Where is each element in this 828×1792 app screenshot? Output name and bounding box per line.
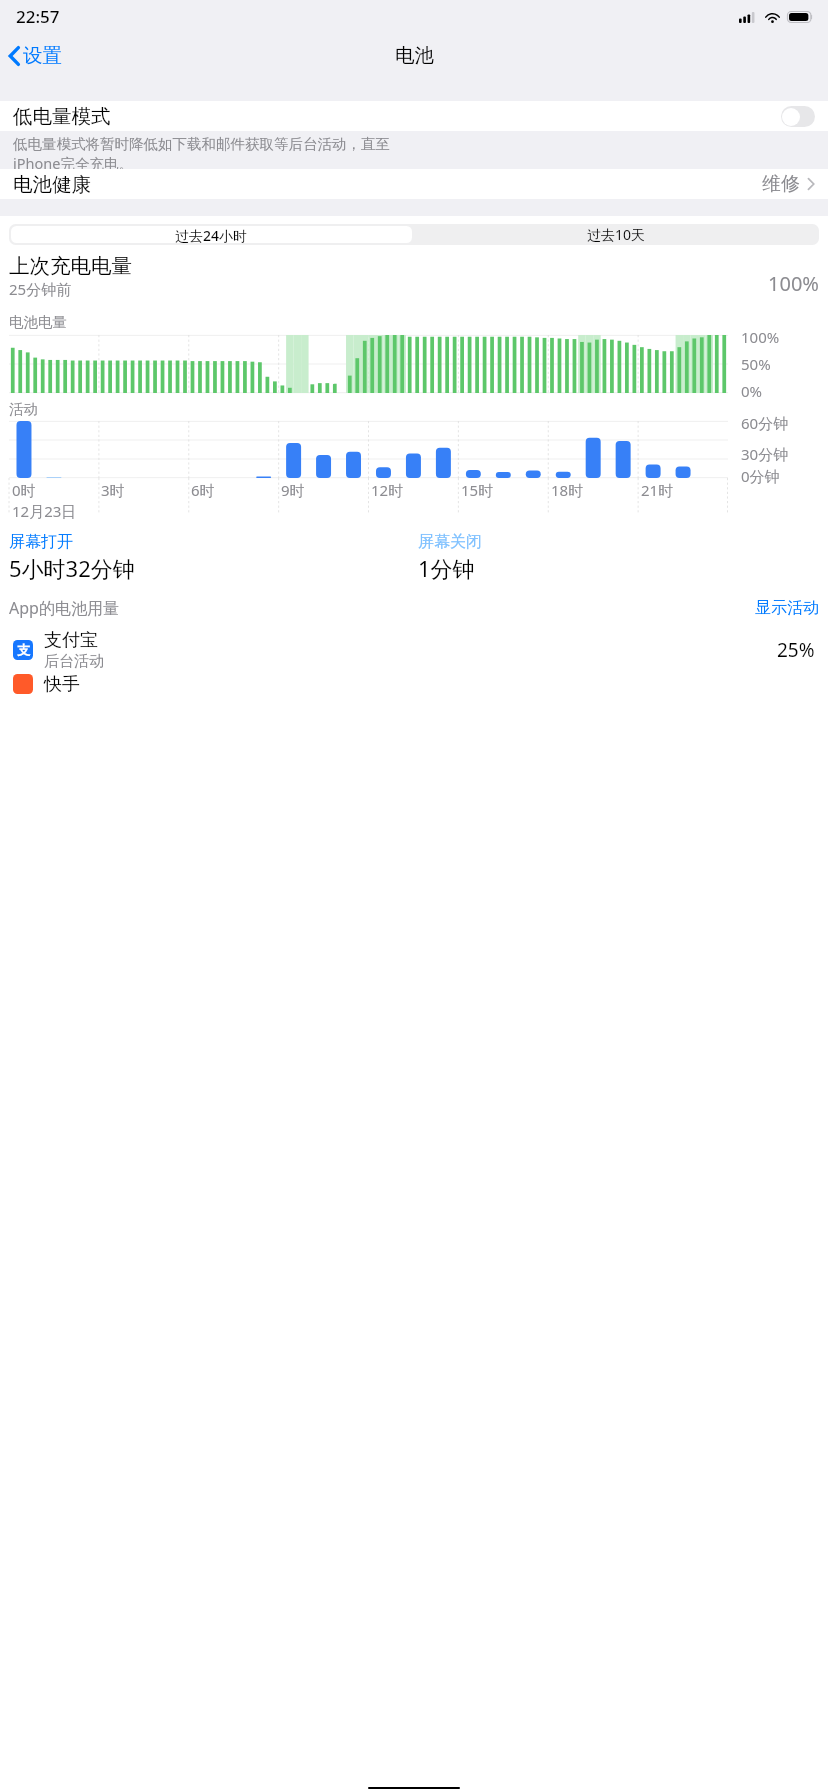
staticText: 过去10天	[587, 225, 646, 244]
staticText: 0时	[12, 480, 36, 500]
staticText: 9时	[281, 480, 305, 500]
button[interactable]: 设置	[6, 38, 64, 73]
button[interactable]: 显示活动	[755, 598, 819, 618]
button[interactable]: 低电量模式	[0, 101, 828, 131]
button[interactable]: 过去24小时	[11, 226, 412, 243]
staticText: 22:57	[16, 5, 60, 28]
staticText: 25分钟前	[9, 279, 72, 299]
staticText: 低电量模式	[13, 104, 111, 129]
staticText: 18时	[551, 480, 584, 500]
staticText: 3时	[101, 480, 125, 500]
staticText: 低电量模式将暂时降低如下载和邮件获取等后台活动，直至 iPhone完全充电。	[13, 135, 390, 169]
staticText: 15时	[461, 480, 494, 500]
staticText: 显示活动	[755, 598, 819, 618]
staticText: 100%	[768, 270, 819, 297]
staticText: 5小时32分钟	[9, 553, 135, 583]
staticText: 支付宝	[44, 629, 98, 652]
button[interactable]: 过去10天	[414, 224, 819, 245]
staticText: 设置	[23, 43, 62, 68]
staticText: 30分钟	[741, 444, 789, 464]
button[interactable]: 支	[0, 628, 828, 671]
staticText: 电池健康	[13, 172, 91, 197]
staticText: 21时	[641, 480, 674, 500]
staticText: 上次充电电量	[9, 253, 132, 279]
button[interactable]: 电池健康	[0, 169, 828, 199]
staticText: 屏幕关闭	[418, 532, 482, 552]
staticText: 电池电量	[9, 313, 67, 331]
staticText: 6时	[191, 480, 215, 500]
staticText: 60分钟	[741, 413, 789, 433]
button[interactable]: 低电量模式	[781, 106, 815, 127]
staticText: 12月23日	[12, 501, 77, 521]
staticText: 屏幕打开	[9, 532, 73, 552]
staticText: 0%	[741, 381, 763, 401]
staticText: 快手	[44, 673, 80, 696]
staticText: 50%	[741, 354, 771, 374]
staticText: 1分钟	[418, 553, 475, 583]
staticText: 支	[17, 642, 30, 658]
staticText: 活动	[9, 400, 38, 418]
staticText: 维修	[762, 172, 800, 196]
staticText: 100%	[741, 327, 780, 347]
staticText: 12时	[371, 480, 404, 500]
staticText: 过去24小时	[175, 226, 248, 243]
staticText: 25%	[777, 637, 815, 663]
staticText: 后台活动	[44, 652, 104, 671]
staticText: 电池	[395, 43, 434, 68]
staticText: App的电池用量	[9, 597, 119, 619]
staticText: 0分钟	[741, 466, 780, 486]
button[interactable]: 快手	[0, 671, 828, 701]
